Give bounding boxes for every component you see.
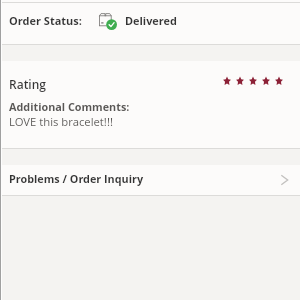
staticText: Problems / Order Inquiry [9,171,144,186]
staticText: Order Status: [9,13,82,28]
other: Open [278,174,289,186]
button[interactable]: Problems / Order Inquiry [0,165,300,195]
staticText: Additional Comments: [9,99,130,114]
staticText: Delivered [125,13,177,28]
staticText: Rating [9,76,46,92]
staticText: LOVE this bracelet!!! [9,114,113,129]
